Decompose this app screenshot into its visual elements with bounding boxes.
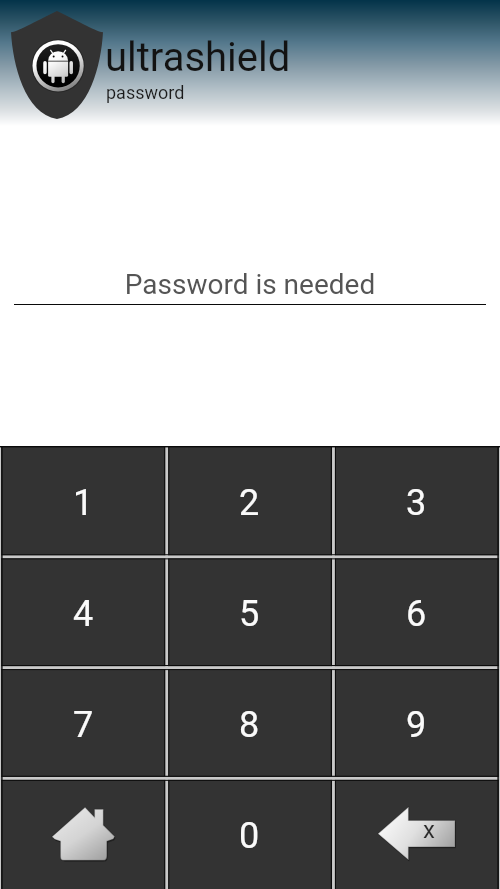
button[interactable]: 8 <box>166 667 333 778</box>
staticText: password <box>106 82 185 103</box>
staticText: 7 <box>73 704 94 746</box>
staticText: 6 <box>406 593 427 635</box>
button[interactable]: 6 <box>333 556 500 667</box>
staticText: ultrashield <box>105 34 291 81</box>
button[interactable]: 0 <box>166 778 333 889</box>
staticText: 9 <box>406 704 427 746</box>
button[interactable]: Home <box>0 778 166 889</box>
staticText: 5 <box>239 593 260 635</box>
staticText: 1 <box>73 482 94 524</box>
staticText: 0 <box>239 815 260 857</box>
button[interactable]: Backspace <box>333 778 500 889</box>
button[interactable]: 4 <box>0 556 166 667</box>
staticText: 8 <box>239 704 260 746</box>
button[interactable]: 5 <box>166 556 333 667</box>
button[interactable]: 9 <box>333 667 500 778</box>
staticText: Password is needed <box>0 268 500 301</box>
button[interactable]: 3 <box>333 446 500 556</box>
staticText: 4 <box>73 593 94 635</box>
button[interactable]: 7 <box>0 667 166 778</box>
staticText: 3 <box>406 482 427 524</box>
button[interactable]: 1 <box>0 446 166 556</box>
staticText: 2 <box>239 482 260 524</box>
button[interactable]: 2 <box>166 446 333 556</box>
staticText: x <box>423 816 435 844</box>
